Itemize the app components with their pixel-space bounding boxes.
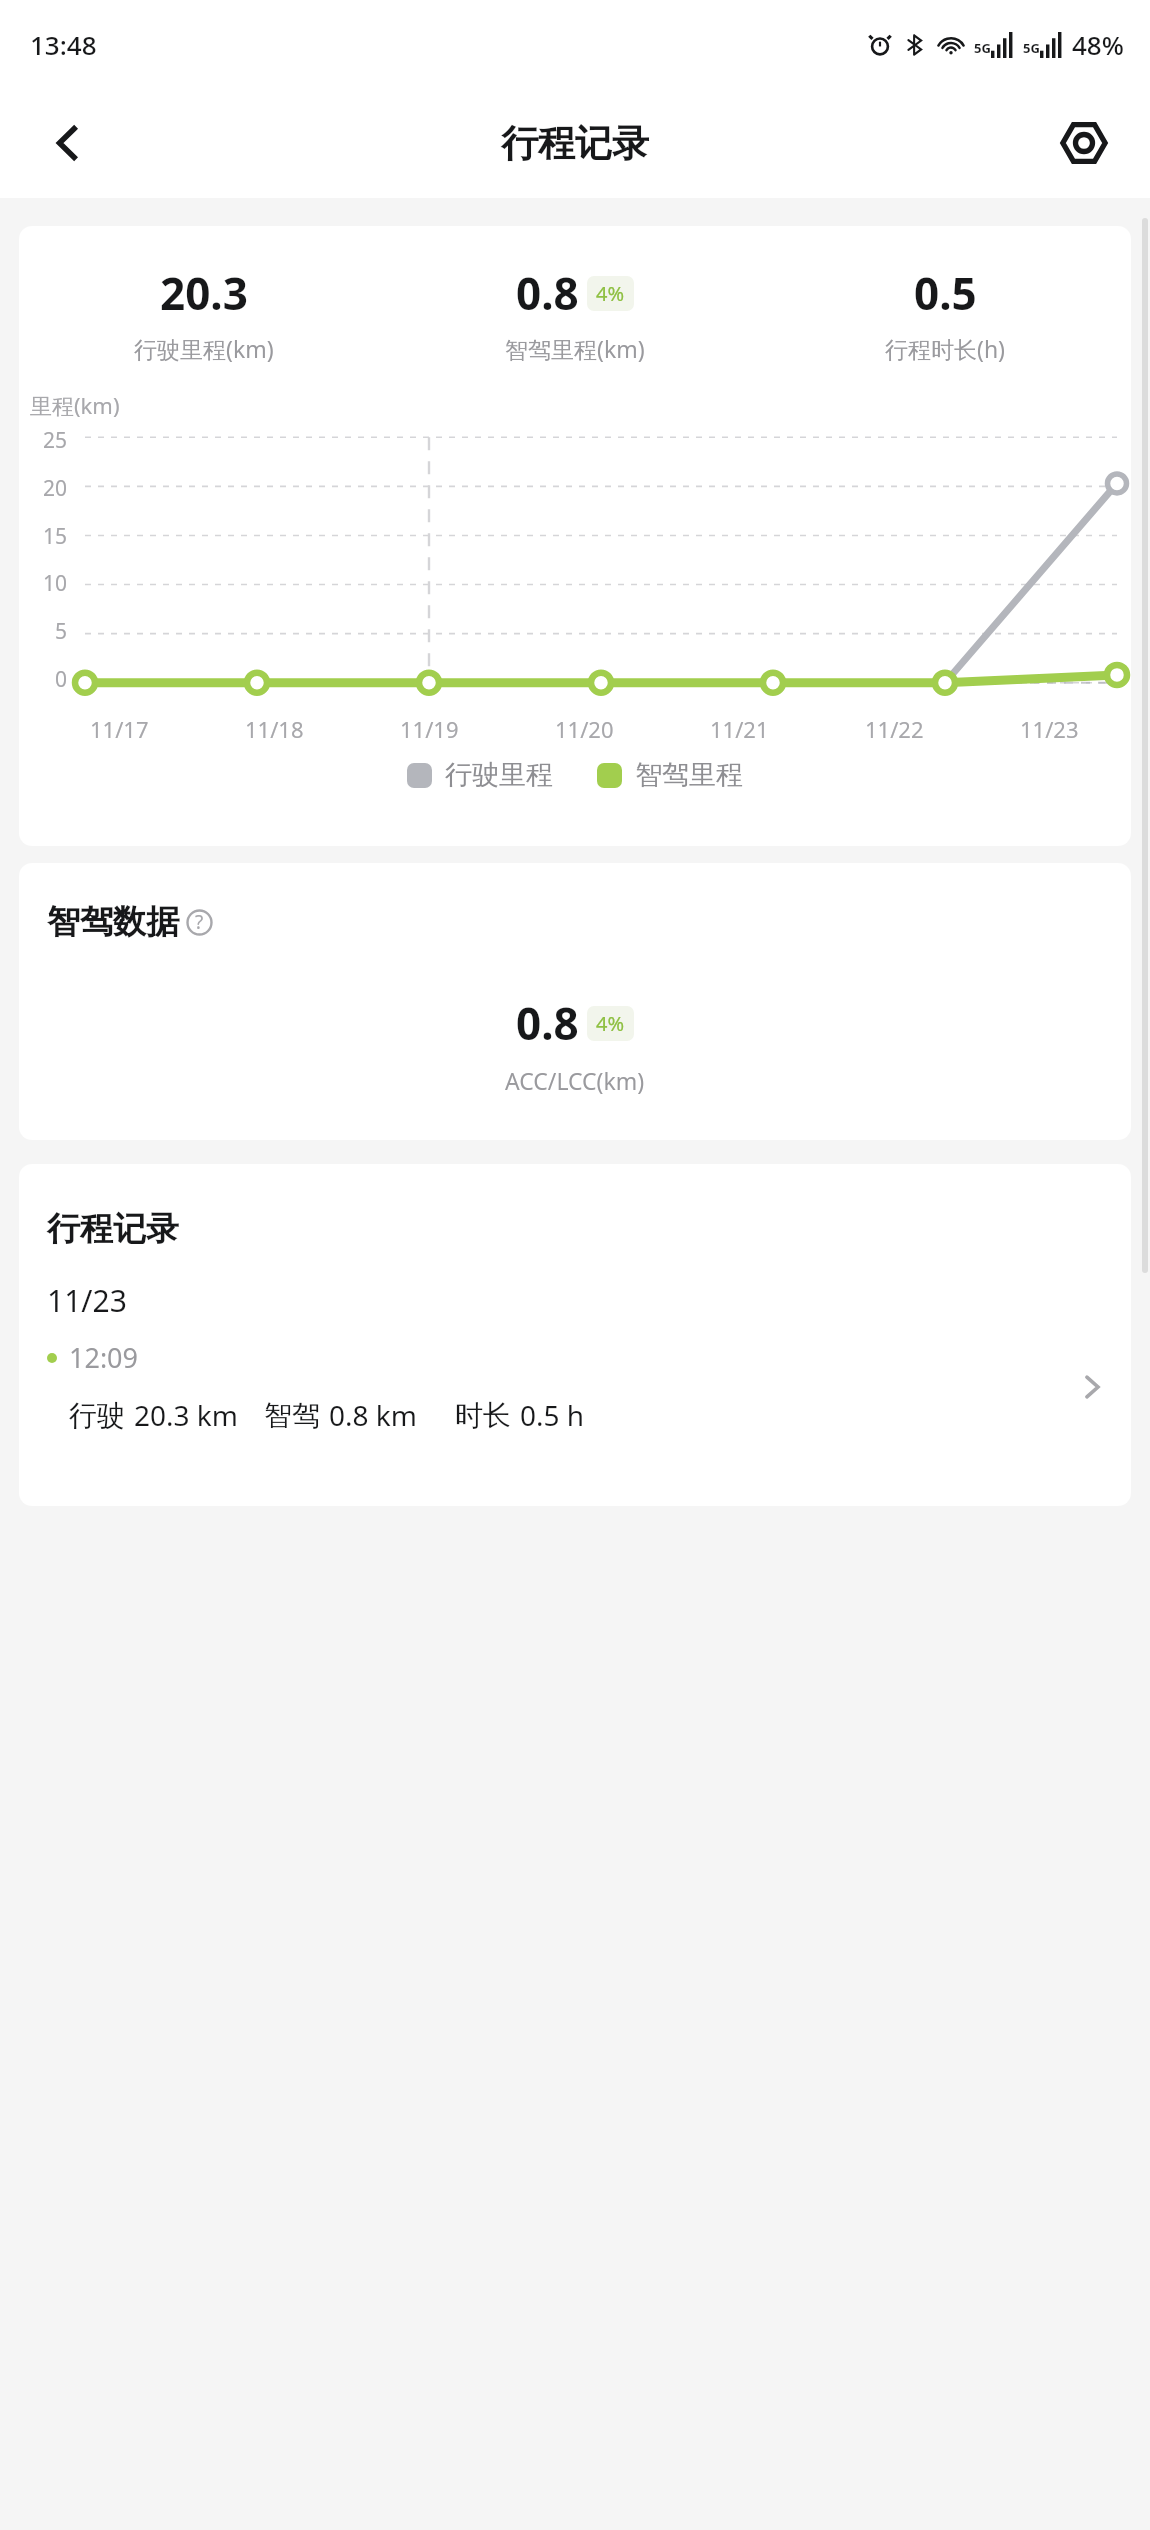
staticText: 25	[42, 426, 67, 455]
staticText: 11/23	[1020, 714, 1079, 744]
staticText: 智驾数据	[47, 901, 179, 943]
staticText: 13:48	[30, 27, 97, 62]
staticText: 20.3 km	[134, 1396, 238, 1434]
staticText: 15	[42, 522, 67, 551]
button[interactable]: 12:09	[19, 1339, 1131, 1434]
button[interactable]: Back	[30, 105, 106, 181]
staticText: 行程记录	[47, 1208, 179, 1250]
staticText: 11/20	[555, 714, 614, 744]
staticText: 5G	[974, 39, 991, 57]
staticText: 0.8	[516, 263, 579, 323]
staticText: 20	[42, 474, 67, 503]
button[interactable]: Help	[184, 907, 214, 937]
staticText: 11/23	[47, 1280, 127, 1321]
staticText: 11/18	[245, 714, 304, 744]
staticText: ?	[195, 909, 204, 935]
staticText: 0.5	[914, 263, 977, 323]
staticText: 行驶	[69, 1398, 125, 1433]
staticText: 11/22	[865, 714, 924, 744]
staticText: 11/17	[90, 714, 149, 744]
other: Details	[1077, 1372, 1107, 1402]
staticText: 0.8	[516, 993, 579, 1053]
staticText: 智驾	[264, 1398, 320, 1433]
staticText: 5G	[1023, 39, 1040, 57]
staticText: 里程(km)	[30, 390, 120, 420]
staticText: 0.5 h	[520, 1396, 585, 1434]
staticText: 4%	[596, 1010, 625, 1037]
staticText: 11/21	[710, 714, 769, 744]
staticText: 行驶里程	[445, 758, 553, 792]
staticText: 5	[54, 617, 67, 646]
staticText: 0.8 km	[329, 1396, 417, 1434]
staticText: 时长	[455, 1398, 511, 1433]
staticText: 12:09	[69, 1339, 139, 1376]
staticText: 行程时长(h)	[885, 333, 1006, 364]
button[interactable]: Settings	[1046, 105, 1122, 181]
staticText: 行程记录	[501, 120, 649, 167]
staticText: 智驾里程(km)	[505, 333, 645, 364]
staticText: 20.3	[160, 263, 248, 323]
staticText: 4%	[596, 280, 625, 307]
staticText: 智驾里程	[635, 758, 743, 792]
staticText: 48%	[1072, 27, 1124, 62]
staticText: 11/19	[400, 714, 459, 744]
staticText: 0	[54, 665, 67, 694]
staticText: 行驶里程(km)	[134, 333, 274, 364]
staticText: ACC/LCC(km)	[505, 1065, 645, 1096]
staticText: 10	[42, 569, 67, 598]
